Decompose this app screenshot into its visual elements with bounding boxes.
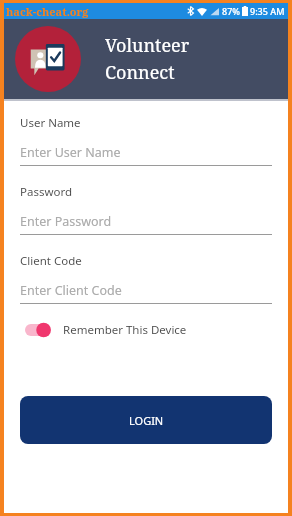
staticText: 9:35 AM — [250, 5, 285, 17]
button[interactable]: User Name — [20, 115, 272, 166]
staticText: 87% — [222, 5, 240, 17]
staticText: Volunteer — [105, 33, 190, 58]
staticText: Connect — [105, 60, 175, 85]
staticText: Password — [20, 184, 73, 200]
staticText: Enter Password — [20, 213, 112, 230]
button[interactable]: Password — [20, 184, 272, 235]
staticText: LOGIN — [129, 413, 164, 428]
button[interactable]: Client Code — [20, 253, 272, 304]
staticText: Enter Client Code — [20, 282, 122, 299]
staticText: User Name — [20, 115, 81, 131]
button[interactable]: Remember This Device — [20, 318, 272, 342]
staticText: Enter User Name — [20, 144, 121, 161]
staticText: Remember This Device — [63, 322, 187, 338]
button[interactable]: LOGIN — [20, 396, 272, 444]
staticText: hack-cheat.org — [6, 4, 89, 19]
staticText: Client Code — [20, 253, 82, 269]
